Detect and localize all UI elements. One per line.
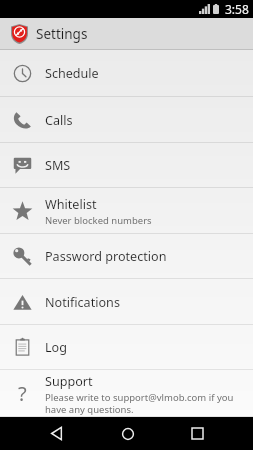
staticText: Calls bbox=[45, 112, 73, 129]
button[interactable]: Settings bbox=[0, 18, 253, 50]
staticText: Whitelist bbox=[45, 196, 97, 213]
button[interactable]: Calls bbox=[0, 97, 253, 143]
staticText: Never blocked numbers bbox=[45, 214, 152, 227]
staticText: Settings bbox=[36, 25, 88, 43]
button[interactable]: Log bbox=[0, 325, 253, 370]
button[interactable]: Notifications bbox=[0, 279, 253, 325]
staticText: Password protection bbox=[45, 248, 167, 265]
staticText: Log bbox=[45, 339, 67, 356]
button[interactable]: Whitelist bbox=[0, 188, 253, 234]
staticText: Notifications bbox=[45, 294, 120, 311]
staticText: Schedule bbox=[45, 65, 99, 82]
button[interactable]: Recents bbox=[167, 417, 227, 450]
button[interactable]: Back bbox=[26, 417, 86, 450]
button[interactable]: Schedule bbox=[0, 50, 253, 97]
staticText: Please write to support@vlmob.com if you… bbox=[45, 391, 234, 415]
staticText: ? bbox=[18, 380, 27, 407]
staticText: 3:58 bbox=[225, 1, 249, 17]
staticText: SMS bbox=[45, 157, 71, 174]
button[interactable]: Password protection bbox=[0, 234, 253, 279]
staticText: Support bbox=[45, 373, 93, 390]
button[interactable]: ? bbox=[0, 370, 253, 417]
button[interactable]: SMS bbox=[0, 143, 253, 188]
button[interactable]: Home bbox=[97, 417, 158, 450]
